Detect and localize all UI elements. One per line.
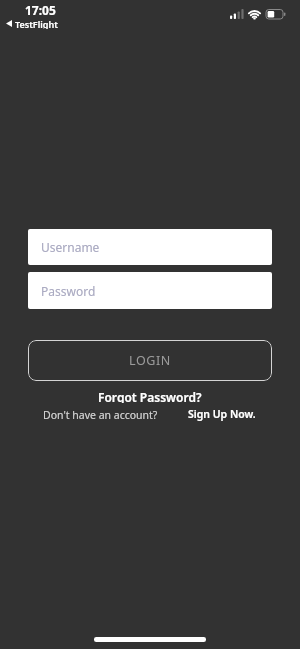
staticText: Forgot Password? xyxy=(98,389,202,403)
button[interactable]: Username xyxy=(28,229,272,265)
button[interactable]: Forgot Password? xyxy=(0,389,300,403)
button[interactable]: Password xyxy=(28,272,272,309)
staticText: Password xyxy=(41,283,96,299)
staticText: 17:05 xyxy=(25,2,56,15)
button[interactable]: LOGIN xyxy=(28,340,272,381)
button[interactable]: Sign Up Now. xyxy=(188,407,256,421)
staticText: Username xyxy=(41,239,100,255)
staticText: LOGIN xyxy=(129,352,171,369)
staticText: TestFlight xyxy=(15,18,58,29)
staticText: Don't have an account? xyxy=(43,408,158,421)
staticText: Sign Up Now. xyxy=(188,407,256,421)
